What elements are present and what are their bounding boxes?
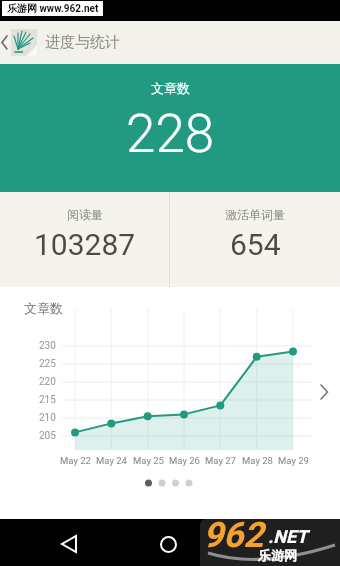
staticText: 阅读量 xyxy=(67,207,103,222)
staticText: 205 xyxy=(39,430,56,442)
button[interactable] xyxy=(54,529,84,559)
staticText: 文章数 xyxy=(24,300,63,316)
staticText: 230 xyxy=(39,340,56,352)
button[interactable]: 阅读量 xyxy=(0,192,169,287)
staticText: 654 xyxy=(230,227,281,262)
staticText: 激活单词量 xyxy=(225,207,285,222)
button[interactable]: 激活单词量 xyxy=(170,192,340,287)
staticText: May 28 xyxy=(242,455,273,466)
staticText: 215 xyxy=(39,394,56,406)
staticText: May 25 xyxy=(133,455,164,466)
staticText: May 29 xyxy=(278,455,309,466)
staticText: May 24 xyxy=(96,455,127,466)
staticText: May 22 xyxy=(60,455,91,466)
staticText: 进度与统计 xyxy=(45,33,120,52)
staticText: May 26 xyxy=(169,455,200,466)
staticText: 乐游网 xyxy=(258,547,297,563)
staticText: 962 xyxy=(203,519,264,556)
staticText: 103287 xyxy=(34,227,136,262)
staticText: 210 xyxy=(39,412,56,424)
button[interactable] xyxy=(0,31,12,55)
button[interactable] xyxy=(312,377,336,407)
staticText: 220 xyxy=(39,376,56,388)
button[interactable] xyxy=(153,528,183,558)
staticText: May 27 xyxy=(205,455,236,466)
staticText: 228 xyxy=(126,103,215,165)
staticText: .NET xyxy=(268,526,308,547)
staticText: 乐游网 www.962.net xyxy=(7,2,99,15)
staticText: 文章数 xyxy=(151,80,190,96)
staticText: 225 xyxy=(39,358,56,370)
